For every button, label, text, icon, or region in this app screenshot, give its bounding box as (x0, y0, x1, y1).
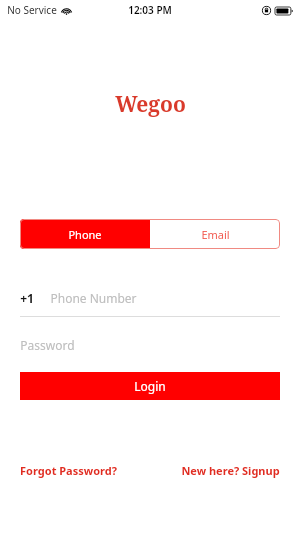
button[interactable]: +1 (20, 287, 280, 309)
button[interactable]: New here? Signup (181, 463, 280, 478)
button[interactable]: Password (20, 335, 280, 355)
staticText: +1 (20, 290, 34, 306)
button[interactable]: Forgot Password? (20, 463, 117, 478)
staticText: 12:03 PM (128, 3, 172, 17)
staticText: Login (134, 378, 166, 394)
button[interactable]: Phone (20, 219, 150, 249)
staticText: Wegoo (115, 90, 186, 119)
staticText: No Service (7, 3, 57, 17)
staticText: Phone Number (50, 290, 137, 306)
staticText: New here? Signup (181, 463, 280, 478)
staticText: Email (201, 227, 230, 242)
staticText: Password (20, 337, 75, 353)
button[interactable]: Email (150, 219, 280, 249)
button[interactable]: Login (20, 372, 280, 400)
staticText: Phone (68, 227, 102, 242)
staticText: Forgot Password? (20, 463, 117, 478)
